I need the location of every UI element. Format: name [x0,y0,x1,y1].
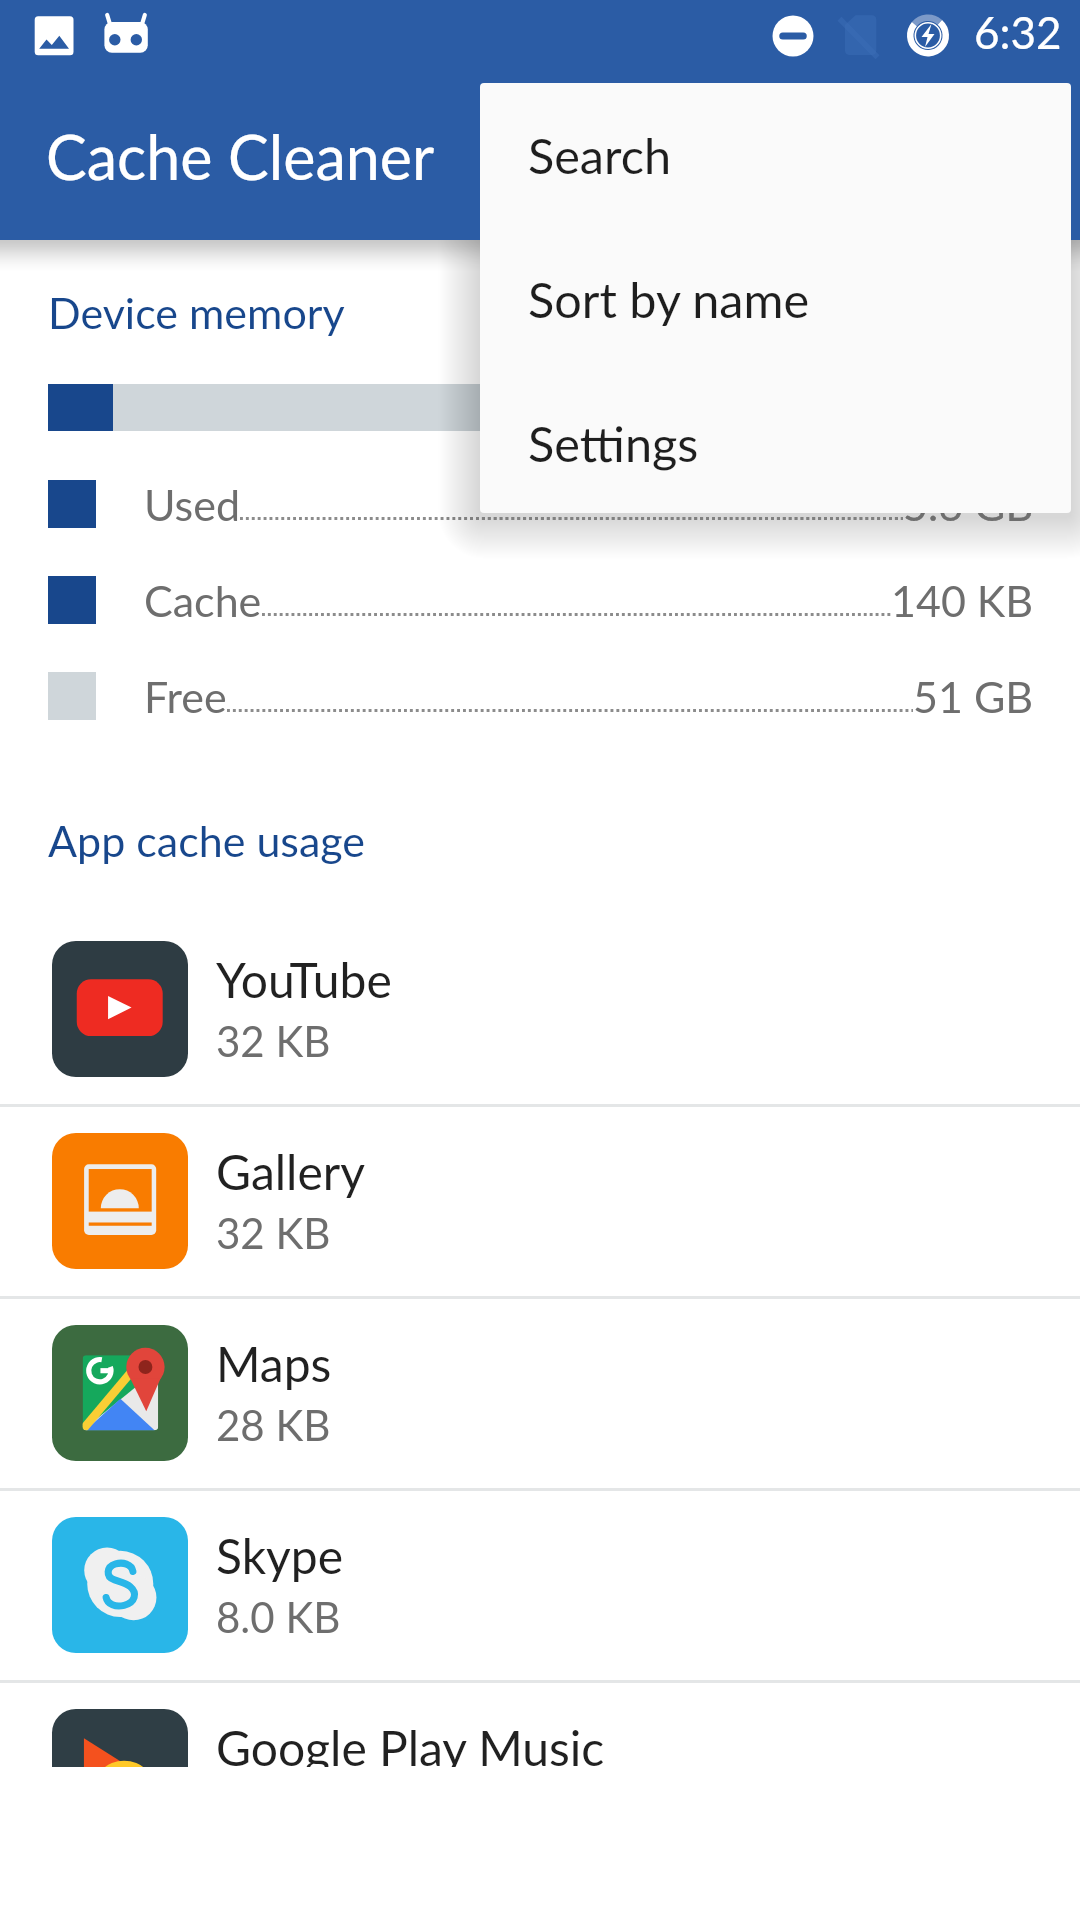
staticText: Used [144,479,240,531]
staticText: 51 GB [913,671,1034,723]
staticText: Gallery [216,1143,365,1201]
staticText: App cache usage [48,815,366,867]
staticText: Sort by name [528,270,810,328]
button[interactable]: YouTube [0,912,1080,1104]
staticText: Settings [528,414,699,472]
staticText: 6:32 [974,6,1062,59]
button[interactable]: Settings [480,371,1071,513]
button[interactable]: Sort by name [480,227,1071,371]
staticText: 140 KB [891,575,1034,627]
staticText: Free [144,671,227,723]
button[interactable]: Google Play Music [0,1680,1080,1767]
staticText: YouTube [216,951,392,1009]
button[interactable]: Gallery [0,1104,1080,1296]
staticText: Cache Cleaner [46,120,435,193]
staticText: 5.6 GB [903,479,1034,531]
staticText: Device memory [48,287,345,339]
staticText: 8.0 KB [216,1592,341,1642]
button[interactable]: Search [480,83,1071,227]
staticText: 32 KB [216,1016,331,1066]
staticText: Skype [216,1527,344,1585]
staticText: Google Play Music [216,1719,605,1767]
staticText: 28 KB [216,1400,331,1450]
button[interactable]: Skype [0,1488,1080,1680]
staticText: Maps [216,1335,332,1393]
staticText: Cache [144,575,262,627]
staticText: 32 KB [216,1208,331,1258]
button[interactable]: Maps [0,1296,1080,1488]
staticText: Search [528,126,672,184]
